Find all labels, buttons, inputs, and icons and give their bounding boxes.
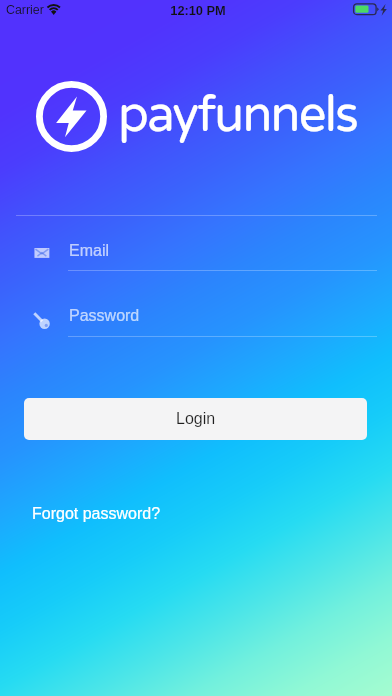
staticText: payfunnels [118,86,358,145]
staticText: Forgot password? [32,505,161,523]
other: Battery charging [353,3,389,17]
button[interactable]: Forgot password? [23,499,170,529]
staticText: Login [176,410,216,428]
staticText: Carrier [6,3,44,17]
staticText: 12:10 PM [2,3,392,17]
staticText: Email [69,242,110,260]
other: Wi-Fi signal [47,3,62,15]
staticText: Password [69,307,140,325]
button[interactable]: Login [24,398,367,440]
